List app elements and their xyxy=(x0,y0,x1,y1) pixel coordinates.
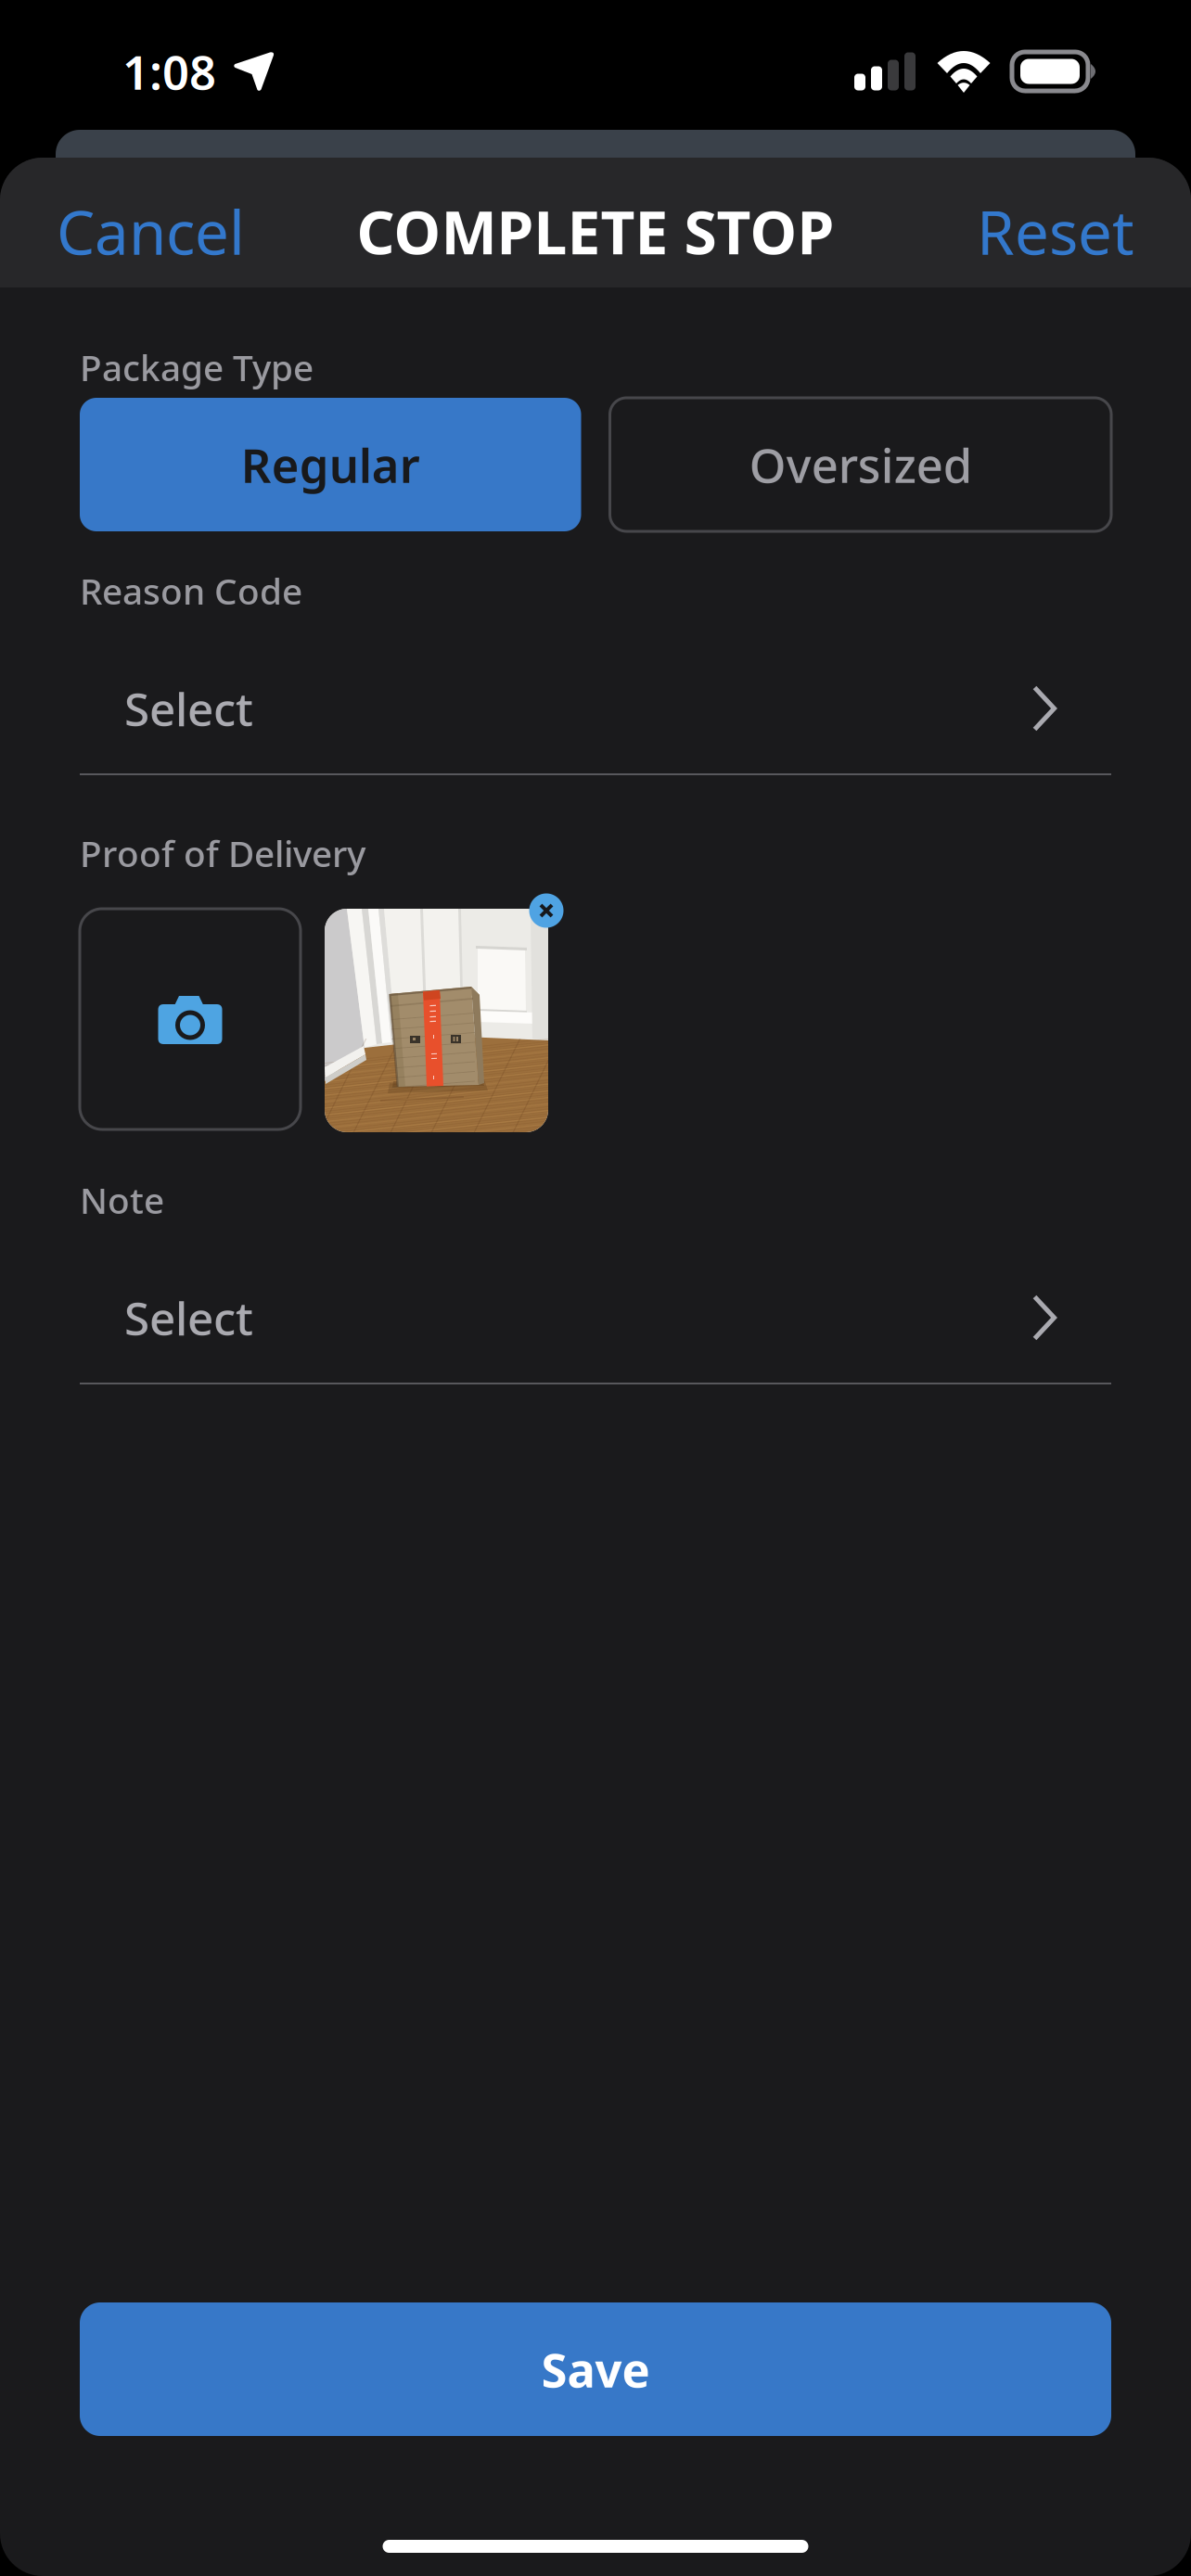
staticText: Reset xyxy=(977,191,1134,272)
button[interactable]: Remove photo xyxy=(526,890,567,931)
staticText: Cancel xyxy=(57,191,245,272)
button[interactable]: Regular xyxy=(80,398,581,531)
button[interactable]: Take photo xyxy=(80,909,301,1129)
button[interactable]: Select xyxy=(80,1218,1111,1384)
staticText: Reason Code xyxy=(80,567,302,614)
button[interactable]: Select xyxy=(80,609,1111,775)
button[interactable]: Reset xyxy=(977,191,1134,272)
staticText: Note xyxy=(80,1176,164,1224)
staticText: Package Type xyxy=(80,343,314,391)
button[interactable]: Oversized xyxy=(610,398,1111,531)
staticText: Oversized xyxy=(749,433,972,496)
button[interactable]: Cancel xyxy=(57,191,245,272)
staticText: Proof of Delivery xyxy=(80,829,365,877)
staticText: Regular xyxy=(241,433,420,496)
button[interactable]: Save xyxy=(80,2302,1111,2436)
staticText: Select xyxy=(124,1287,253,1348)
staticText: Select xyxy=(124,678,253,739)
staticText: Save xyxy=(541,2338,650,2400)
staticText: 1:08 xyxy=(122,40,216,103)
staticText: COMPLETE STOP xyxy=(357,192,834,271)
